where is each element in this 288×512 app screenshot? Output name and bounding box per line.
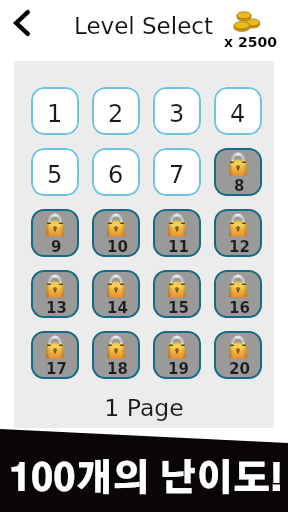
staticText: 4 [230,100,246,128]
staticText: 5 [47,161,63,189]
button[interactable]: 18 [92,331,140,379]
button[interactable]: 12 [214,209,262,257]
staticText: 15 [168,299,189,316]
staticText: 100개의 난이도! [9,462,283,499]
button[interactable]: 20 [214,331,262,379]
button[interactable]: 9 [31,209,79,257]
staticText: 9 [51,238,62,255]
staticText: 1 Page [0,394,288,421]
button[interactable]: 15 [153,270,201,318]
staticText: 17 [46,360,67,377]
button[interactable]: 2 [92,87,140,135]
button[interactable]: 13 [31,270,79,318]
staticText: 3 [169,100,185,128]
staticText: 10 [107,238,128,255]
staticText: 8 [234,177,245,194]
staticText: 20 [229,360,250,377]
button[interactable]: 5 [31,148,79,196]
button[interactable]: 8 [214,148,262,196]
staticText: x 2500 [224,34,277,50]
staticText: 12 [229,238,250,255]
button[interactable]: 6 [92,148,140,196]
staticText: 16 [229,299,250,316]
staticText: 14 [107,299,128,316]
button[interactable]: 10 [92,209,140,257]
button[interactable]: 7 [153,148,201,196]
staticText: 7 [169,161,185,189]
button[interactable]: 1 [31,87,79,135]
staticText: 6 [108,161,124,189]
button[interactable]: 19 [153,331,201,379]
button[interactable]: 11 [153,209,201,257]
button[interactable]: 16 [214,270,262,318]
button[interactable]: 4 [214,87,262,135]
staticText: Level Select [74,13,213,40]
button[interactable]: 17 [31,331,79,379]
button[interactable]: 14 [92,270,140,318]
button[interactable]: Back [4,2,40,42]
button[interactable]: 3 [153,87,201,135]
staticText: 13 [46,299,67,316]
staticText: 18 [107,360,128,377]
staticText: 2 [108,100,124,128]
staticText: 1 [47,100,63,128]
staticText: 19 [168,360,189,377]
staticText: 11 [168,238,189,255]
